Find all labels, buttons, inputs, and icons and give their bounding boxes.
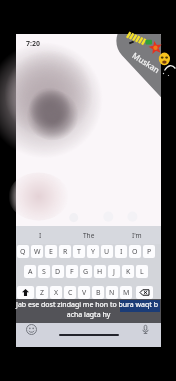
button[interactable]: M bbox=[120, 286, 132, 299]
staticText: H bbox=[97, 267, 103, 277]
staticText: acha lagta hy bbox=[16, 310, 161, 320]
button[interactable]: Y bbox=[87, 245, 99, 258]
staticText: S bbox=[42, 267, 46, 277]
button[interactable]: T bbox=[73, 245, 85, 258]
staticText: N bbox=[109, 288, 115, 298]
button[interactable]: P bbox=[143, 245, 155, 258]
button[interactable]: I bbox=[16, 226, 65, 244]
button[interactable]: V bbox=[78, 286, 90, 299]
staticText: Muskan bbox=[130, 49, 162, 75]
button[interactable]: R bbox=[59, 245, 71, 258]
button[interactable]: F bbox=[66, 265, 78, 278]
staticText: L bbox=[140, 267, 144, 277]
staticText: U bbox=[104, 247, 110, 257]
button[interactable]: A bbox=[24, 265, 36, 278]
button[interactable]: G bbox=[80, 265, 92, 278]
staticText: 7:20 bbox=[26, 39, 40, 49]
staticText: O bbox=[132, 247, 138, 257]
button[interactable]: K bbox=[122, 265, 134, 278]
button[interactable]: C bbox=[64, 286, 76, 299]
staticText: I bbox=[39, 231, 42, 240]
staticText: K bbox=[126, 267, 131, 277]
button[interactable]: Z bbox=[36, 286, 48, 299]
button[interactable]: O bbox=[129, 245, 141, 258]
staticText: F bbox=[70, 267, 74, 277]
staticText: D bbox=[55, 267, 61, 277]
button[interactable]: I bbox=[115, 245, 127, 258]
button[interactable]: W bbox=[31, 245, 43, 258]
staticText: B bbox=[96, 288, 101, 298]
staticText: A bbox=[28, 267, 33, 277]
staticText: X bbox=[54, 288, 59, 298]
button[interactable]: D bbox=[52, 265, 64, 278]
staticText: M bbox=[123, 288, 130, 298]
staticText: R bbox=[63, 247, 68, 257]
staticText: J bbox=[113, 267, 115, 277]
staticText: E bbox=[49, 247, 53, 257]
button[interactable]: S bbox=[38, 265, 50, 278]
staticText: Jab ese dost zindagi me hon to bura waqt… bbox=[16, 300, 158, 310]
staticText: I'm bbox=[132, 231, 142, 240]
staticText: Z bbox=[40, 288, 45, 298]
button[interactable]: U bbox=[101, 245, 113, 258]
staticText: Q bbox=[20, 247, 26, 257]
button[interactable]: L bbox=[136, 265, 148, 278]
button[interactable]: E bbox=[45, 245, 57, 258]
staticText: G bbox=[83, 267, 89, 277]
button[interactable]: I'm bbox=[113, 226, 161, 244]
button[interactable]: Emoji bbox=[26, 324, 37, 335]
staticText: W bbox=[34, 247, 41, 257]
staticText: The bbox=[83, 231, 95, 240]
button[interactable]: Shift bbox=[17, 286, 34, 299]
staticText: V bbox=[82, 288, 87, 298]
button[interactable]: N bbox=[106, 286, 118, 299]
staticText: T bbox=[77, 247, 81, 257]
button[interactable]: Q bbox=[17, 245, 29, 258]
button[interactable]: Voice input bbox=[140, 324, 151, 335]
button[interactable]: X bbox=[50, 286, 62, 299]
staticText: Y bbox=[91, 247, 95, 257]
staticText: C bbox=[68, 288, 73, 298]
button[interactable]: The bbox=[65, 226, 113, 244]
button[interactable]: B bbox=[92, 286, 104, 299]
button[interactable]: J bbox=[108, 265, 120, 278]
button[interactable]: H bbox=[94, 265, 106, 278]
staticText: I bbox=[120, 247, 123, 257]
staticText: P bbox=[147, 247, 152, 257]
button[interactable]: Backspace bbox=[136, 286, 153, 299]
